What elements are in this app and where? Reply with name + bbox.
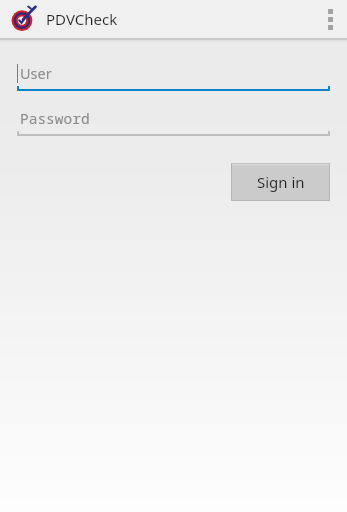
button[interactable]: User xyxy=(17,61,330,95)
staticText: Password xyxy=(20,108,90,128)
staticText: PDVCheck xyxy=(46,9,118,29)
staticText: Sign in xyxy=(257,172,305,192)
button[interactable]: Sign in xyxy=(231,163,330,201)
button[interactable]: Password xyxy=(17,106,330,140)
button[interactable]: More options xyxy=(313,0,347,38)
staticText: User xyxy=(20,63,52,83)
